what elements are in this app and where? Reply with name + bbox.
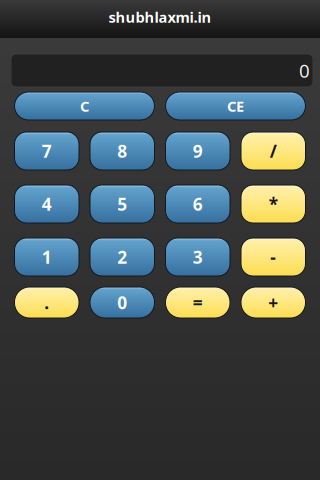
staticText: 7 [42, 139, 52, 162]
staticText: * [269, 192, 278, 215]
button[interactable]: 1 [14, 238, 79, 276]
button[interactable]: 0 [90, 287, 154, 318]
button[interactable]: 7 [14, 132, 79, 170]
button[interactable]: * [241, 185, 305, 223]
button[interactable]: CE [165, 92, 305, 120]
staticText: 4 [42, 192, 52, 215]
button[interactable]: . [14, 287, 79, 318]
staticText: 0 [299, 58, 310, 83]
staticText: . [44, 291, 49, 314]
staticText: 3 [193, 245, 203, 268]
button[interactable]: 8 [90, 132, 154, 170]
button[interactable]: + [241, 287, 305, 318]
button[interactable]: C [14, 92, 154, 120]
staticText: 0 [117, 291, 127, 314]
button[interactable]: - [241, 238, 305, 276]
staticText: 5 [117, 192, 127, 215]
button[interactable]: 9 [165, 132, 230, 170]
staticText: - [270, 245, 276, 268]
button[interactable]: 2 [90, 238, 154, 276]
button[interactable]: / [241, 132, 305, 170]
staticText: C [80, 96, 89, 116]
staticText: 9 [193, 139, 203, 162]
button[interactable]: = [165, 287, 230, 318]
staticText: CE [227, 96, 244, 116]
staticText: 2 [117, 245, 127, 268]
staticText: 8 [117, 139, 127, 162]
staticText: / [270, 139, 277, 162]
button[interactable]: 6 [165, 185, 230, 223]
button[interactable]: 3 [165, 238, 230, 276]
button[interactable]: 4 [14, 185, 79, 223]
staticText: 1 [42, 245, 52, 268]
staticText: = [193, 291, 203, 314]
staticText: shubhlaxmi.in [108, 7, 211, 27]
staticText: 6 [193, 192, 203, 215]
button[interactable]: 5 [90, 185, 154, 223]
staticText: + [268, 291, 278, 314]
